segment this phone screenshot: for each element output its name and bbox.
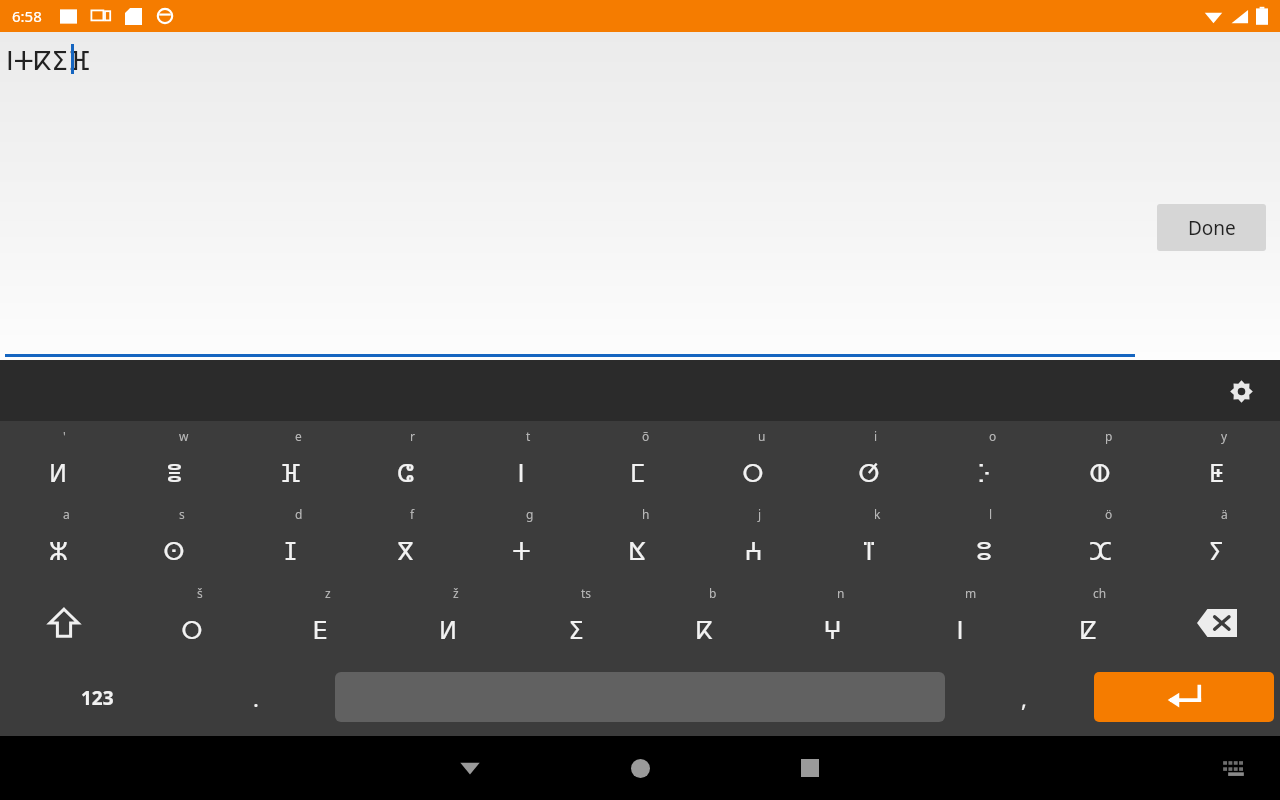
button[interactable]: r	[348, 428, 462, 506]
staticText: ⵍ	[439, 617, 457, 645]
staticText: ⵔ	[742, 460, 764, 488]
staticText: .	[253, 683, 259, 713]
staticText: Done	[1188, 215, 1236, 241]
staticText: ⴿ	[629, 538, 646, 566]
button[interactable]: ts	[519, 585, 633, 663]
staticText: ⴾ	[978, 460, 990, 488]
staticText: o	[989, 428, 997, 444]
staticText: ⵏⵜⴽⵉⴼ	[6, 46, 91, 76]
staticText: ⴳ	[397, 538, 414, 566]
staticText: '	[63, 428, 66, 444]
staticText: ⵍ	[49, 460, 67, 488]
staticText: ⵓ	[976, 538, 992, 566]
staticText: ⴽ	[696, 617, 713, 645]
button[interactable]: Keyboard settings	[1221, 371, 1261, 411]
button[interactable]: h	[580, 506, 694, 584]
button[interactable]: d	[233, 506, 347, 584]
staticText: ⵛ	[397, 460, 414, 488]
button[interactable]: k	[812, 506, 926, 584]
button[interactable]: Home	[610, 738, 670, 798]
staticText: ä	[1221, 506, 1228, 522]
staticText: ⵜ	[512, 538, 531, 566]
staticText: ⵖ	[823, 617, 842, 645]
staticText: d	[295, 506, 303, 522]
staticText: ⵏ	[517, 460, 525, 488]
staticText: h	[642, 506, 650, 522]
staticText: ,	[1021, 683, 1027, 713]
staticText: t	[526, 428, 531, 444]
button[interactable]: e	[233, 428, 347, 506]
button[interactable]: y	[1159, 428, 1273, 506]
button[interactable]: 123	[50, 673, 144, 723]
staticText: j	[758, 506, 762, 522]
button[interactable]: Recent apps	[780, 738, 840, 798]
staticText: ⵊ	[284, 538, 297, 566]
button[interactable]: '	[1, 428, 115, 506]
button[interactable]: ch	[1031, 585, 1145, 663]
button[interactable]: .	[215, 673, 297, 723]
button[interactable]: j	[696, 506, 810, 584]
staticText: ⴻ	[166, 460, 183, 488]
button[interactable]: Enter	[1094, 672, 1274, 722]
staticText: u	[758, 428, 766, 444]
staticText: ⵚ	[858, 460, 880, 488]
button[interactable]: o	[927, 428, 1041, 506]
button[interactable]: Backspace	[1178, 595, 1256, 651]
staticText: ⵟ	[1209, 460, 1224, 488]
button[interactable]: f	[348, 506, 462, 584]
staticText: n	[837, 585, 845, 601]
staticText: ⵣ	[49, 538, 68, 566]
staticText: ⵇ	[1080, 617, 1097, 645]
button[interactable]: ž	[391, 585, 505, 663]
staticText: k	[874, 506, 881, 522]
staticText: ⴼ	[280, 460, 301, 488]
staticText: ts	[581, 585, 592, 601]
button[interactable]: ä	[1159, 506, 1273, 584]
staticText: ⴹ	[312, 617, 328, 645]
button[interactable]: n	[775, 585, 889, 663]
button[interactable]: Back	[440, 738, 500, 798]
staticText: f	[410, 506, 415, 522]
staticText: y	[1221, 428, 1228, 444]
button[interactable]: s	[117, 506, 231, 584]
staticText: ⵋ	[1089, 538, 1112, 566]
button[interactable]: g	[464, 506, 578, 584]
staticText: ch	[1093, 585, 1107, 601]
staticText: a	[63, 506, 70, 522]
button[interactable]: l	[927, 506, 1041, 584]
button[interactable]: z	[263, 585, 377, 663]
staticText: g	[526, 506, 534, 522]
button[interactable]: Done	[1157, 204, 1266, 251]
staticText: e	[295, 428, 302, 444]
button[interactable]: ,	[984, 673, 1064, 723]
staticText: ⵙ	[163, 538, 185, 566]
staticText: ⵉ	[568, 617, 584, 645]
button[interactable]: b	[647, 585, 761, 663]
staticText: w	[179, 428, 189, 444]
button[interactable]: t	[464, 428, 578, 506]
button[interactable]: š	[135, 585, 249, 663]
staticText: 123	[81, 685, 114, 711]
button[interactable]: õ	[580, 428, 694, 506]
button[interactable]: u	[696, 428, 810, 506]
button[interactable]: p	[1043, 428, 1157, 506]
button[interactable]: Shift	[24, 595, 104, 651]
button[interactable]: Switch keyboard	[1206, 738, 1266, 798]
button[interactable]: w	[117, 428, 231, 506]
button[interactable]: a	[1, 506, 115, 584]
staticText: ž	[453, 585, 459, 601]
staticText: ⵎ	[630, 460, 645, 488]
staticText: ⵢ	[1208, 538, 1224, 566]
staticText: i	[874, 428, 878, 444]
staticText: ⵔ	[181, 617, 203, 645]
staticText: ⵀ	[1089, 460, 1111, 488]
button[interactable]: m	[903, 585, 1017, 663]
button[interactable]: i	[812, 428, 926, 506]
staticText: l	[989, 506, 993, 522]
button[interactable]: ö	[1043, 506, 1157, 584]
staticText: p	[1105, 428, 1113, 444]
staticText: m	[965, 585, 977, 601]
staticText: r	[410, 428, 415, 444]
staticText: ⵏ	[956, 617, 964, 645]
